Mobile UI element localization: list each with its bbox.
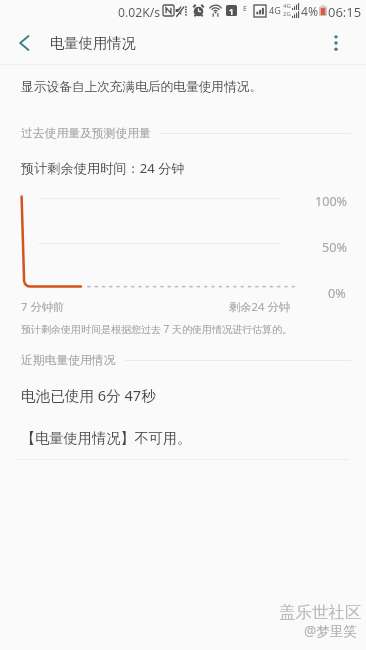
staticText: @梦里笑 bbox=[304, 621, 358, 640]
staticText: 【电量使用情况】不可用。 bbox=[21, 429, 192, 447]
staticText: 100% bbox=[315, 193, 348, 210]
staticText: 0% bbox=[328, 285, 346, 302]
staticText: 4% bbox=[301, 3, 319, 20]
staticText: 0.02K/s bbox=[118, 4, 161, 21]
staticText: 剩余24 分钟 bbox=[229, 299, 291, 314]
staticText: 显示设备自上次充满电后的电量使用情况。 bbox=[21, 79, 263, 95]
button[interactable]: More options bbox=[318, 22, 358, 64]
staticText: 50% bbox=[322, 239, 347, 256]
button[interactable]: Back bbox=[0, 22, 48, 64]
staticText: 7 分钟前 bbox=[21, 299, 65, 314]
staticText: 2G bbox=[283, 10, 291, 18]
staticText: 1 bbox=[229, 6, 234, 17]
staticText: 4G bbox=[269, 4, 281, 16]
staticText: 4G bbox=[283, 2, 291, 10]
staticText: 电量使用情况 bbox=[50, 34, 136, 52]
staticText: 预计剩余使用时间是根据您过去 7 天的使用情况进行估算的。 bbox=[21, 322, 292, 336]
staticText: 预计剩余使用时间：24 分钟 bbox=[21, 159, 185, 177]
staticText: 06:15 bbox=[328, 3, 362, 21]
staticText: E bbox=[243, 4, 247, 14]
staticText: 盖乐世社区 bbox=[279, 602, 362, 623]
staticText: 过去使用量及预测使用量 bbox=[21, 126, 151, 141]
staticText: 电池已使用 6分 47秒 bbox=[21, 385, 156, 405]
staticText: 近期电量使用情况 bbox=[21, 353, 116, 368]
